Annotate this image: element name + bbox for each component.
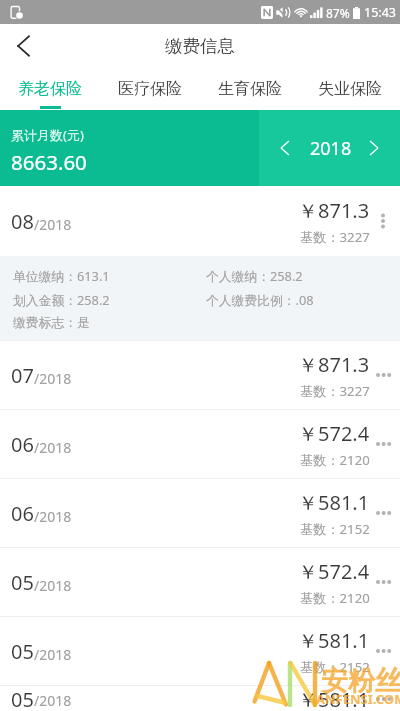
staticText: 8663.60 (11, 148, 87, 176)
button[interactable]: 医疗保险 (100, 68, 200, 110)
button[interactable]: More options (370, 686, 396, 711)
staticText: /2018 (34, 215, 72, 234)
staticText: 划入金额：258.2 (13, 291, 206, 308)
staticText: ￥871.3 (298, 197, 370, 224)
button[interactable]: 05 (0, 686, 400, 711)
staticText: 基数：2120 (300, 589, 370, 607)
staticText: 单位缴纳：613.1 (13, 267, 206, 284)
button[interactable]: Previous year (269, 132, 301, 164)
staticText: 06 (11, 500, 34, 527)
staticText: 08 (11, 208, 34, 235)
staticText: 个人缴纳：258.2 (206, 267, 400, 284)
staticText: 87% (326, 5, 350, 21)
button[interactable]: 失业保险 (300, 68, 400, 110)
staticText: 05 (11, 638, 34, 665)
button[interactable]: 生育保险 (200, 68, 300, 110)
staticText: ￥572.4 (298, 420, 370, 447)
button[interactable]: Next year (358, 132, 390, 164)
staticText: 15:43 (364, 4, 396, 21)
button[interactable]: 05 (0, 617, 400, 685)
button[interactable]: 08 (0, 186, 400, 256)
staticText: 养老保险 (18, 79, 82, 99)
staticText: ￥572.4 (298, 558, 370, 585)
staticText: /2018 (34, 576, 72, 595)
button[interactable]: 07 (0, 341, 400, 409)
staticText: 安粉丝 (321, 664, 400, 698)
staticText: 基数：3227 (300, 228, 370, 246)
button[interactable]: More options (370, 638, 396, 664)
staticText: ￥871.3 (298, 351, 370, 378)
staticText: 基数：2152 (300, 520, 370, 538)
staticText: 医疗保险 (118, 79, 182, 99)
staticText: 2018 (310, 136, 352, 161)
staticText: 基数：2152 (300, 658, 370, 676)
staticText: 失业保险 (318, 79, 382, 99)
staticText: 缴费信息 (165, 35, 235, 57)
button[interactable]: 06 (0, 410, 400, 478)
staticText: 个人缴费比例：.08 (206, 291, 400, 308)
staticText: ￥581.1 (298, 489, 370, 516)
staticText: 05 (11, 569, 34, 596)
staticText: 基数：2120 (300, 451, 370, 469)
staticText: 基数：3227 (300, 382, 370, 400)
staticText: /2018 (34, 645, 72, 664)
button[interactable]: More options (370, 431, 396, 457)
staticText: 05 (11, 686, 34, 711)
staticText: ANFENSI.COM (316, 690, 400, 708)
button[interactable]: More options (370, 362, 396, 388)
button[interactable]: 06 (0, 479, 400, 547)
staticText: ￥581.1 (298, 627, 370, 654)
button[interactable]: 05 (0, 548, 400, 616)
button[interactable]: More options (370, 500, 396, 526)
staticText: /2018 (34, 691, 72, 710)
staticText: /2018 (34, 507, 72, 526)
staticText: 累计月数(元) (11, 126, 84, 144)
staticText: 生育保险 (218, 79, 282, 99)
button[interactable]: 养老保险 (0, 68, 100, 110)
staticText: 缴费标志：是 (13, 315, 90, 331)
staticText: 07 (11, 362, 34, 389)
button[interactable]: More options (370, 208, 396, 234)
staticText: ￥581.1 (298, 686, 370, 711)
staticText: /2018 (34, 438, 72, 457)
button[interactable]: Back (0, 24, 46, 68)
button[interactable]: More options (370, 569, 396, 595)
staticText: /2018 (34, 369, 72, 388)
staticText: 06 (11, 431, 34, 458)
